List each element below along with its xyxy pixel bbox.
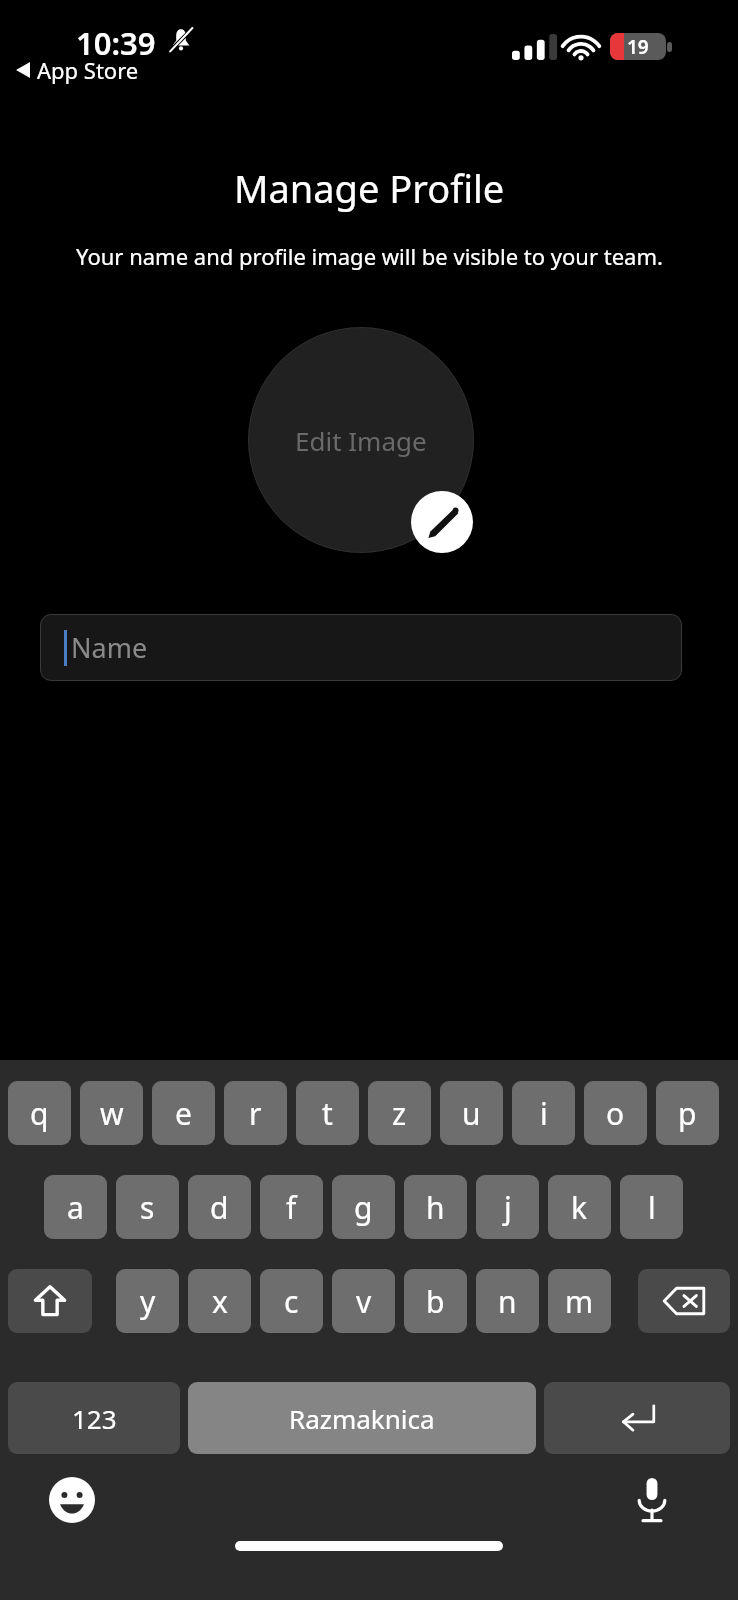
staticText: w (100, 1093, 124, 1134)
staticText: i (540, 1093, 548, 1134)
button[interactable]: Shift (8, 1269, 92, 1333)
button[interactable]: Razmaknica (188, 1382, 536, 1454)
button[interactable]: Backspace (638, 1269, 730, 1333)
button[interactable]: Edit Image (248, 327, 474, 553)
staticText: u (462, 1093, 481, 1134)
button[interactable]: g (332, 1175, 395, 1239)
staticText: 19 (627, 34, 649, 60)
staticText: m (565, 1281, 594, 1322)
button[interactable]: Numbers (8, 1382, 180, 1454)
button[interactable]: f (260, 1175, 323, 1239)
staticText: h (426, 1187, 445, 1228)
button[interactable]: s (116, 1175, 179, 1239)
staticText: z (392, 1093, 407, 1134)
button[interactable]: Return (544, 1382, 730, 1454)
staticText: v (356, 1281, 372, 1322)
button[interactable]: d (188, 1175, 251, 1239)
button[interactable]: e (152, 1081, 215, 1145)
staticText: g (354, 1187, 373, 1228)
staticText: p (678, 1093, 697, 1134)
button[interactable]: y (116, 1269, 179, 1333)
button[interactable]: z (368, 1081, 431, 1145)
staticText: 123 (72, 1401, 117, 1436)
button[interactable]: a (44, 1175, 107, 1239)
button[interactable]: Dictate (626, 1474, 678, 1526)
button[interactable]: l (620, 1175, 683, 1239)
button[interactable]: i (512, 1081, 575, 1145)
staticText: q (30, 1093, 49, 1134)
staticText: y (140, 1281, 156, 1322)
staticText: App Store (37, 55, 139, 85)
button[interactable]: p (656, 1081, 719, 1145)
button[interactable]: Edit image (411, 491, 473, 553)
staticText: c (284, 1281, 299, 1322)
staticText: Your name and profile image will be visi… (76, 241, 663, 271)
button[interactable]: Emoji (48, 1476, 96, 1524)
staticText: r (249, 1093, 262, 1134)
button[interactable]: h (404, 1175, 467, 1239)
staticText: o (606, 1093, 625, 1134)
button[interactable]: x (188, 1269, 251, 1333)
button[interactable]: t (296, 1081, 359, 1145)
button[interactable]: o (584, 1081, 647, 1145)
staticText: x (212, 1281, 228, 1322)
button[interactable]: q (8, 1081, 71, 1145)
staticText: b (426, 1281, 445, 1322)
staticText: n (498, 1281, 517, 1322)
button[interactable]: u (440, 1081, 503, 1145)
button[interactable]: r (224, 1081, 287, 1145)
button[interactable]: b (404, 1269, 467, 1333)
button[interactable]: k (548, 1175, 611, 1239)
button[interactable]: m (548, 1269, 611, 1333)
staticText: Manage Profile (234, 162, 505, 214)
staticText: k (571, 1187, 588, 1228)
staticText: j (504, 1187, 512, 1228)
button[interactable]: n (476, 1269, 539, 1333)
button[interactable]: v (332, 1269, 395, 1333)
staticText: f (286, 1187, 297, 1228)
staticText: 10:39 (76, 22, 156, 64)
staticText: d (210, 1187, 229, 1228)
staticText: a (67, 1187, 84, 1228)
button[interactable]: w (80, 1081, 143, 1145)
staticText: s (140, 1187, 155, 1228)
button[interactable]: Name (40, 614, 682, 681)
staticText: Name (71, 629, 148, 666)
button[interactable]: j (476, 1175, 539, 1239)
button[interactable]: c (260, 1269, 323, 1333)
staticText: e (175, 1093, 192, 1134)
staticText: l (648, 1187, 656, 1228)
staticText: Razmaknica (289, 1401, 435, 1436)
staticText: Edit Image (295, 423, 427, 458)
staticText: t (322, 1093, 333, 1134)
